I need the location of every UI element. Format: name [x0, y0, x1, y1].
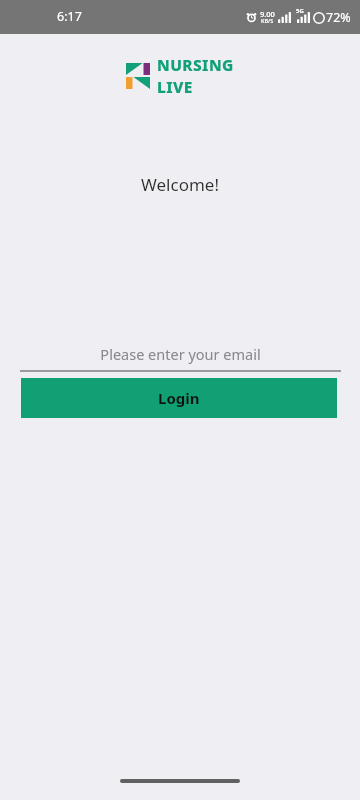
- staticText: 5G: [296, 7, 304, 15]
- staticText: NURSING: [157, 54, 234, 75]
- button[interactable]: Please enter your email: [20, 344, 341, 372]
- staticText: 72%: [326, 9, 351, 26]
- staticText: LIVE: [157, 76, 193, 97]
- staticText: 9.00: [260, 9, 275, 19]
- staticText: 6:17: [57, 8, 82, 25]
- staticText: Please enter your email: [20, 344, 341, 364]
- staticText: Login: [158, 388, 200, 408]
- staticText: Welcome!: [0, 173, 360, 196]
- staticText: KB/S: [261, 17, 274, 24]
- button[interactable]: Login: [21, 378, 337, 418]
